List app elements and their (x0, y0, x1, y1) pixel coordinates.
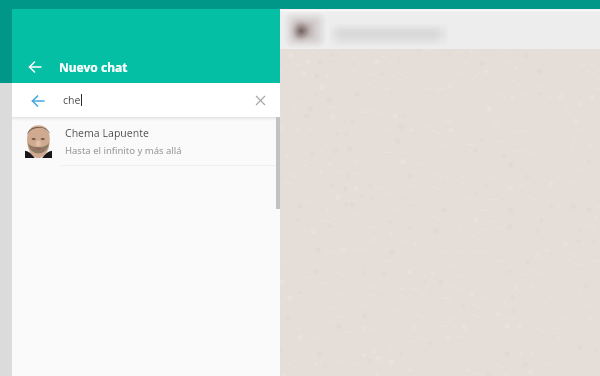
staticText: Chema Lapuente (65, 126, 149, 140)
staticText: che (63, 93, 81, 107)
staticText: Hasta el infinito y más allá (65, 144, 182, 157)
button[interactable]: Chema Lapuente (12, 118, 280, 165)
button[interactable]: Clear search (248, 88, 272, 112)
button[interactable]: Back (25, 88, 49, 112)
button[interactable]: Back (23, 55, 47, 79)
staticText: Nuevo chat (59, 59, 128, 75)
